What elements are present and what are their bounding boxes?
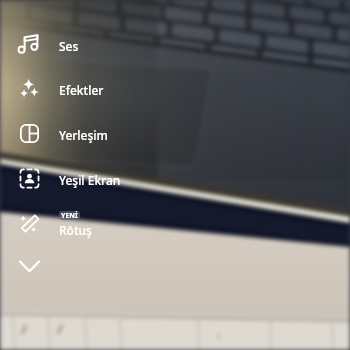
staticText: Efektler bbox=[59, 82, 104, 98]
button[interactable]: Yerleşim bbox=[0, 111, 180, 155]
button[interactable]: Yeşil Ekran bbox=[0, 156, 180, 200]
staticText: Rötuş bbox=[59, 222, 92, 238]
staticText: Yeşil Ekran bbox=[59, 172, 121, 188]
staticText: Ses bbox=[59, 38, 79, 54]
button[interactable]: Ses bbox=[0, 22, 180, 66]
button[interactable]: Daha fazla bbox=[15, 250, 44, 279]
staticText: YENİ bbox=[61, 211, 78, 220]
button[interactable]: Efektler bbox=[0, 66, 180, 110]
button[interactable]: YENİ bbox=[0, 201, 180, 245]
staticText: Yerleşim bbox=[59, 127, 108, 143]
